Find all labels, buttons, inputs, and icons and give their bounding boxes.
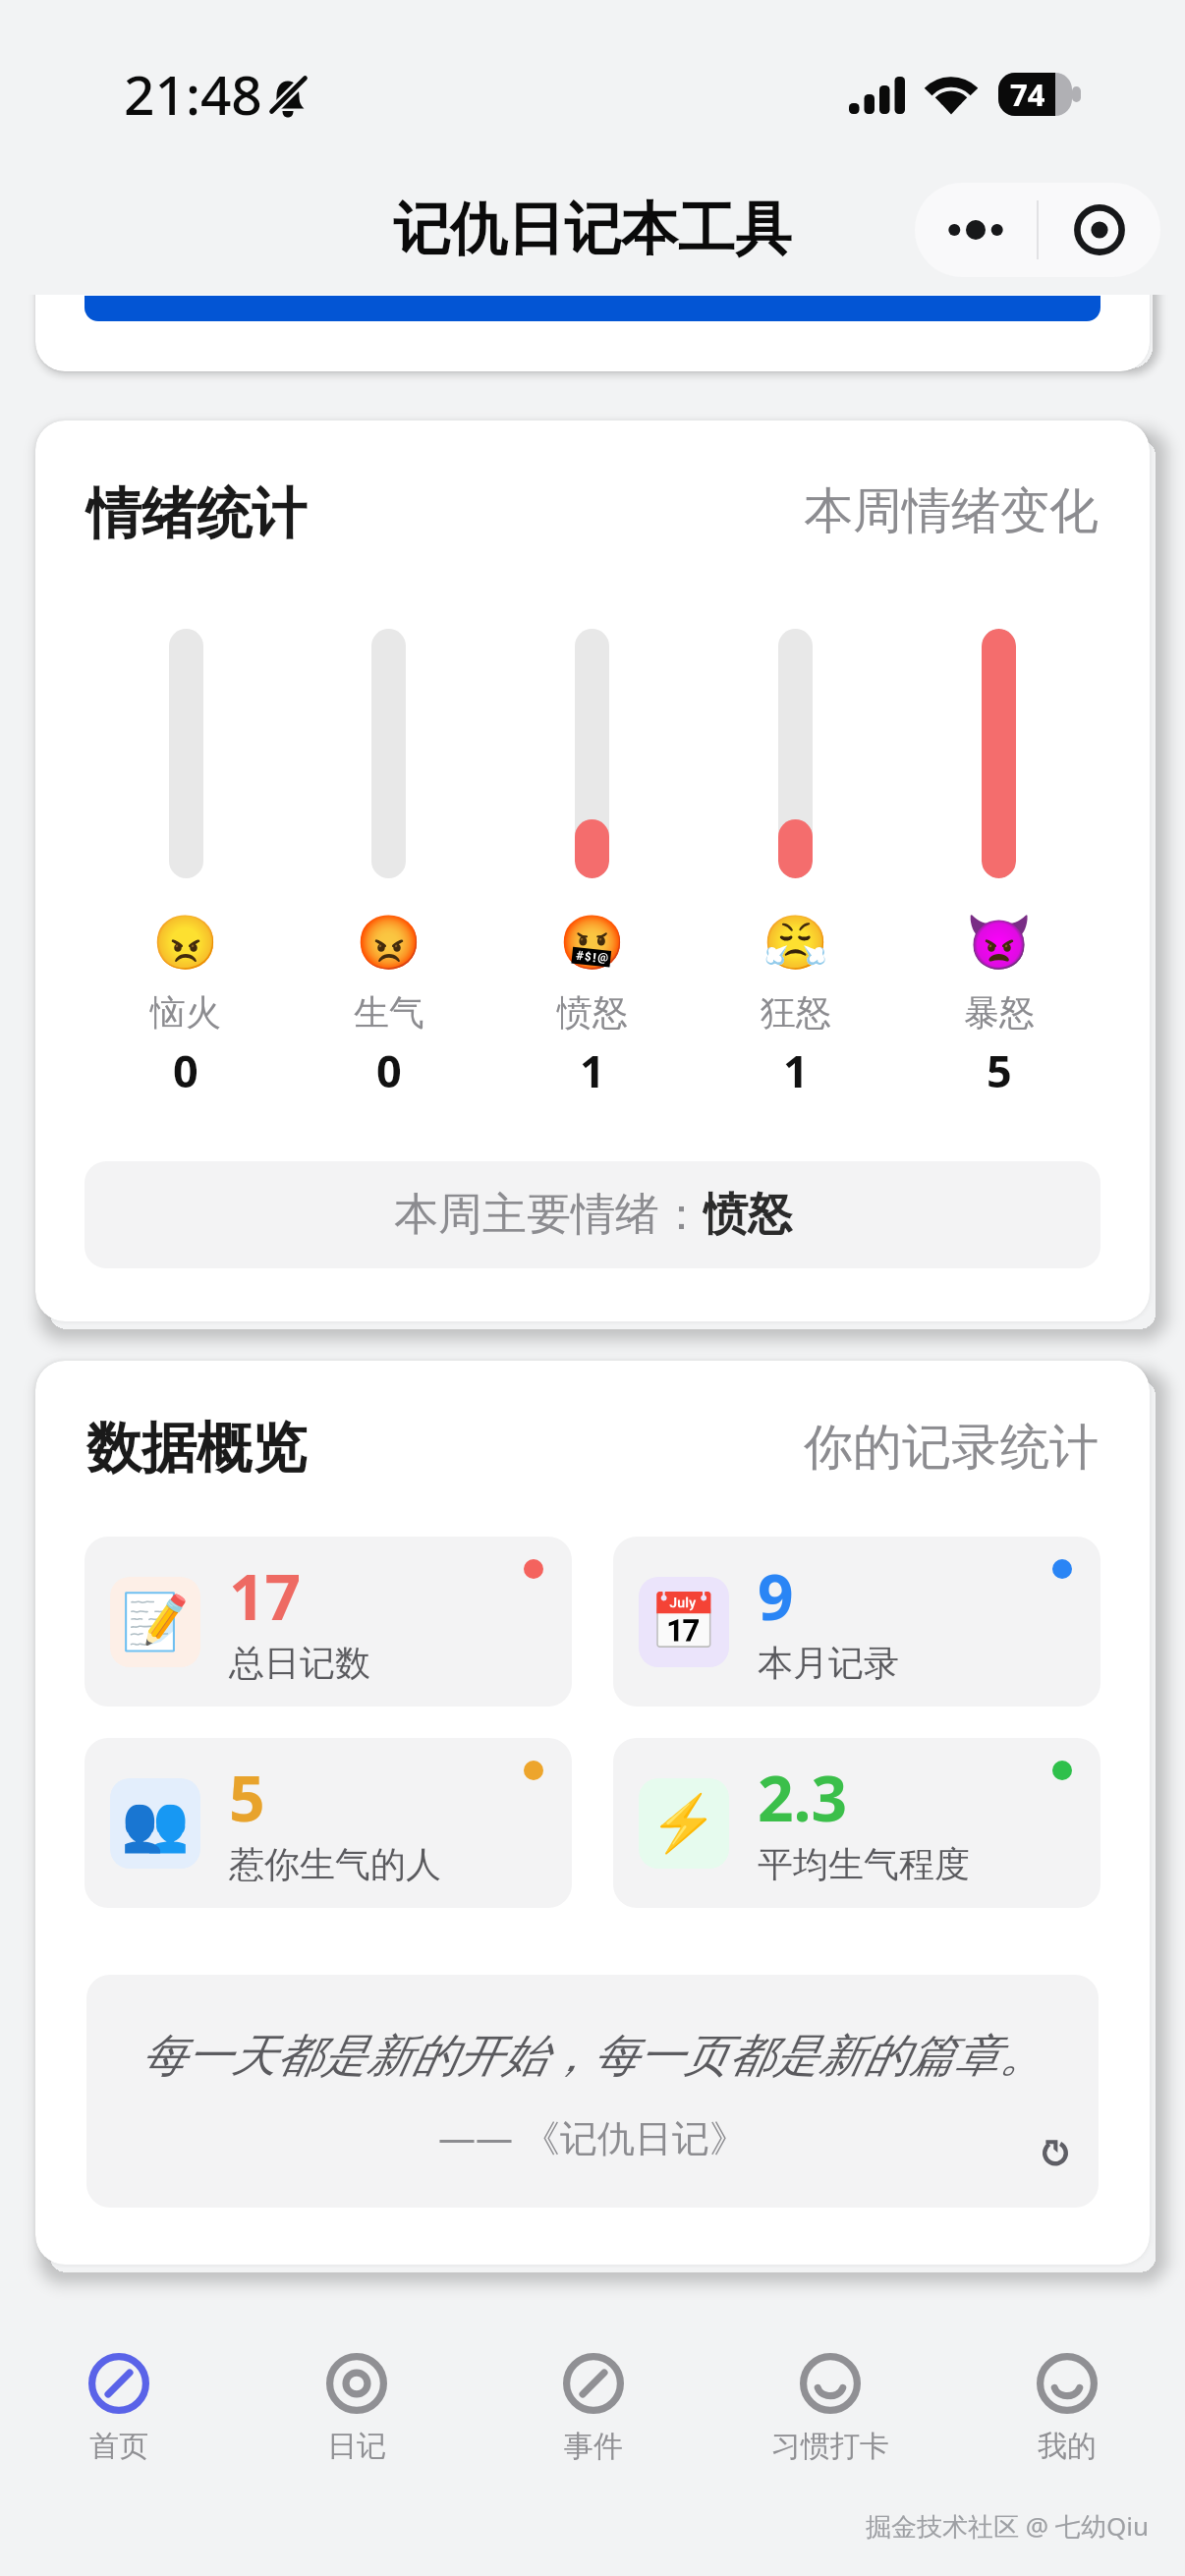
button[interactable]: 📝 [85, 1537, 572, 1707]
staticText: 👥 [121, 1791, 190, 1856]
staticText: 1 [783, 1040, 809, 1100]
staticText: 记仇日记本工具 [393, 194, 792, 265]
staticText: 本周情绪变化 [804, 480, 1099, 542]
staticText: 暴怒 [964, 990, 1035, 1035]
staticText: 情绪统计 [86, 479, 307, 549]
staticText: 总日记数 [229, 1641, 370, 1685]
button[interactable]: More options [915, 183, 1037, 277]
button[interactable]: 👥 [85, 1738, 572, 1908]
staticText: 数据概览 [86, 1414, 307, 1484]
button[interactable] [85, 296, 1100, 321]
staticText: 1 [580, 1040, 605, 1100]
staticText: 愤怒 [704, 1187, 792, 1243]
staticText: ⚡ [649, 1791, 718, 1856]
staticText: 9 [758, 1553, 794, 1639]
staticText: 习惯打卡 [771, 2428, 889, 2465]
staticText: 📝 [121, 1590, 190, 1654]
staticText: 每一天都是新的开始，每一页都是新的篇章。 [141, 2028, 1044, 2085]
button[interactable]: 日记 [238, 2348, 475, 2505]
staticText: 生气 [354, 990, 424, 1035]
staticText: 0 [376, 1040, 402, 1100]
staticText: 😡 [356, 912, 423, 974]
staticText: 本周主要情绪： [394, 1187, 704, 1243]
staticText: 事件 [564, 2428, 623, 2465]
button[interactable]: 首页 [0, 2348, 238, 2505]
staticText: 📅 [649, 1590, 718, 1654]
staticText: 掘金技术社区 @ 七幼Qiu [866, 2508, 1149, 2544]
button[interactable]: 📅 [613, 1537, 1100, 1707]
staticText: 狂怒 [761, 990, 831, 1035]
staticText: 0 [173, 1040, 198, 1100]
button[interactable]: 我的 [948, 2348, 1185, 2505]
staticText: 日记 [327, 2428, 386, 2465]
staticText: 17 [229, 1553, 302, 1639]
staticText: 你的记录统计 [804, 1417, 1099, 1479]
staticText: 2.3 [758, 1755, 848, 1840]
staticText: 惹你生气的人 [229, 1842, 441, 1886]
staticText: 本月记录 [758, 1641, 899, 1685]
button[interactable]: Close mini program [1039, 183, 1160, 277]
staticText: 5 [987, 1040, 1012, 1100]
button[interactable]: 事件 [475, 2348, 711, 2505]
staticText: 我的 [1038, 2428, 1097, 2465]
staticText: 74 [1010, 74, 1045, 115]
staticText: 🤬 [559, 912, 626, 974]
staticText: 👿 [966, 912, 1033, 974]
staticText: —— 《记仇日记》 [438, 2111, 747, 2162]
staticText: 首页 [89, 2428, 148, 2465]
staticText: 愤怒 [557, 990, 628, 1035]
staticText: 5 [229, 1755, 265, 1840]
staticText: 平均生气程度 [758, 1842, 970, 1886]
staticText: 恼火 [150, 990, 221, 1035]
staticText: 21:48 [124, 57, 262, 131]
staticText: 😠 [152, 912, 219, 974]
button[interactable]: 习惯打卡 [711, 2348, 948, 2505]
staticText: 😤 [762, 912, 829, 974]
button[interactable]: Refresh quote [1034, 2129, 1077, 2172]
button[interactable]: ⚡ [613, 1738, 1100, 1908]
